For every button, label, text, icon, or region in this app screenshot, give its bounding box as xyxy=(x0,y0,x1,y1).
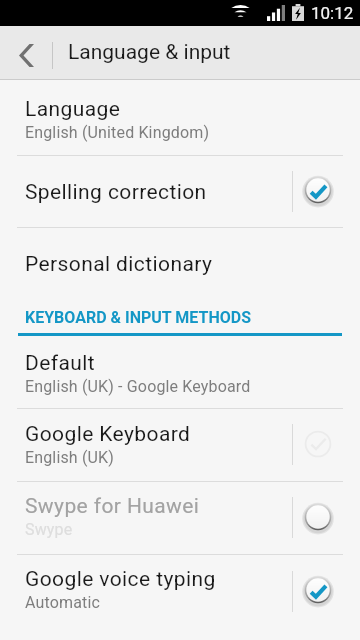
button[interactable] xyxy=(0,554,292,628)
staticText: English (UK) xyxy=(25,448,114,467)
button[interactable]: Toggle Spelling correction xyxy=(293,155,360,227)
staticText: Language & input xyxy=(68,40,231,65)
button[interactable]: KEYBOARD & INPUT METHODS xyxy=(0,300,360,336)
button[interactable]: Toggle Swype for Huawei xyxy=(293,481,360,554)
button[interactable] xyxy=(0,155,292,227)
staticText: Google Keyboard xyxy=(25,422,191,447)
staticText: KEYBOARD & INPUT METHODS xyxy=(25,308,251,327)
staticText: English (UK) - Google Keyboard xyxy=(25,377,251,396)
button[interactable] xyxy=(0,227,360,300)
staticText: Swype xyxy=(25,520,73,539)
staticText: English (United Kingdom) xyxy=(25,123,210,142)
staticText: Personal dictionary xyxy=(25,252,213,277)
staticText: Spelling correction xyxy=(25,180,207,205)
button[interactable]: Toggle Google Keyboard xyxy=(293,408,360,481)
button[interactable] xyxy=(0,80,360,155)
button[interactable] xyxy=(0,408,292,481)
staticText: Google voice typing xyxy=(25,567,216,592)
staticText: Swype for Huawei xyxy=(25,494,200,519)
staticText: Default xyxy=(25,351,95,376)
staticText: Automatic xyxy=(25,593,100,612)
button[interactable]: Toggle Google voice typing xyxy=(293,554,360,628)
button[interactable]: Navigate up xyxy=(0,26,52,80)
button[interactable] xyxy=(0,481,292,554)
button[interactable] xyxy=(0,336,360,408)
staticText: 10:12 xyxy=(311,3,354,23)
staticText: Language xyxy=(25,97,121,122)
